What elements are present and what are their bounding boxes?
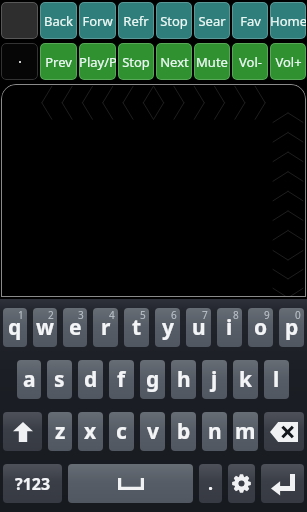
staticText: c	[116, 417, 127, 446]
staticText: 7	[202, 308, 208, 322]
button[interactable]: Prev	[40, 43, 77, 80]
button[interactable]: q	[3, 308, 27, 347]
button[interactable]: j	[202, 360, 227, 399]
staticText: 6	[171, 308, 177, 322]
staticText: e	[69, 313, 82, 342]
staticText: 9	[264, 308, 270, 322]
button[interactable]: e	[63, 308, 87, 347]
button[interactable]: n	[202, 412, 227, 451]
staticText: k	[239, 365, 253, 394]
button[interactable]: w	[33, 308, 57, 347]
button[interactable]: Stop	[118, 43, 154, 80]
staticText: 5	[140, 308, 146, 322]
staticText: 0	[295, 308, 301, 322]
staticText: l	[273, 365, 280, 394]
staticText: Play/P	[79, 53, 116, 71]
staticText: y	[162, 313, 174, 342]
button[interactable]: b	[171, 412, 196, 451]
staticText: 1	[18, 308, 24, 322]
button[interactable]: Menu	[1, 2, 38, 39]
staticText: r	[101, 313, 111, 342]
staticText: Prev	[45, 53, 72, 71]
staticText: Vol+	[275, 53, 302, 71]
staticText: t	[132, 313, 142, 342]
button[interactable]: r	[93, 308, 118, 347]
staticText: Vol-	[239, 53, 262, 71]
staticText: u	[192, 313, 206, 342]
staticText: Stop	[122, 53, 150, 71]
button[interactable]: d	[78, 360, 103, 399]
staticText: 2	[48, 308, 54, 322]
staticText: d	[84, 365, 98, 394]
staticText: Refr	[123, 12, 149, 30]
button[interactable]: Enter	[261, 464, 304, 503]
button[interactable]: x	[78, 412, 103, 451]
staticText: w	[36, 313, 54, 342]
button[interactable]: Settings	[228, 464, 255, 503]
staticText: Mute	[196, 53, 228, 71]
button[interactable]: Mute	[194, 43, 230, 80]
button[interactable]: Forw	[79, 2, 116, 39]
staticText: 3	[78, 308, 84, 322]
button[interactable]: Next	[156, 43, 192, 80]
button[interactable]: Home	[270, 2, 306, 39]
staticText: m	[235, 417, 256, 446]
staticText: 8	[233, 308, 239, 322]
button[interactable]: k	[233, 360, 258, 399]
button[interactable]: i	[217, 308, 242, 347]
button[interactable]: Fav	[232, 2, 268, 39]
button[interactable]: z	[48, 412, 72, 451]
button[interactable]: l	[264, 360, 289, 399]
button[interactable]: ?123	[3, 464, 62, 503]
button[interactable]: Vol+	[270, 43, 306, 80]
staticText: o	[254, 313, 268, 342]
button[interactable]: o	[248, 308, 273, 347]
staticText: Next	[160, 53, 189, 71]
button[interactable]: g	[140, 360, 165, 399]
staticText: g	[146, 365, 160, 394]
staticText: a	[23, 365, 36, 394]
button[interactable]: v	[140, 412, 165, 451]
button[interactable]: f	[109, 360, 134, 399]
button[interactable]: s	[47, 360, 72, 399]
button[interactable]: Vol-	[232, 43, 268, 80]
staticText: q	[8, 313, 22, 342]
staticText: v	[147, 417, 159, 446]
staticText: .	[208, 471, 214, 496]
button[interactable]: m	[233, 412, 258, 451]
button[interactable]: Space	[68, 464, 193, 503]
staticText: i	[226, 313, 233, 342]
staticText: b	[177, 417, 191, 446]
button[interactable]: Backspace	[264, 412, 304, 451]
staticText: f	[117, 365, 126, 394]
button[interactable]: Play/P	[79, 43, 116, 80]
staticText: 4	[109, 308, 115, 322]
button[interactable]: t	[124, 308, 149, 347]
button[interactable]: Shift	[3, 412, 42, 451]
button[interactable]: Stop	[156, 2, 192, 39]
button[interactable]: a	[17, 360, 41, 399]
button[interactable]: Refr	[118, 2, 154, 39]
button[interactable]: More	[1, 43, 38, 80]
button[interactable]: .	[199, 464, 222, 503]
staticText: j	[211, 365, 218, 394]
button[interactable]	[1, 84, 306, 297]
staticText: z	[55, 417, 66, 446]
button[interactable]: Back	[40, 2, 77, 39]
staticText: Sear	[198, 12, 226, 30]
button[interactable]: Sear	[194, 2, 230, 39]
button[interactable]: h	[171, 360, 196, 399]
staticText: n	[208, 417, 222, 446]
staticText: Stop	[160, 12, 188, 30]
staticText: Forw	[82, 12, 113, 30]
staticText: x	[84, 417, 97, 446]
staticText: p	[285, 313, 299, 342]
staticText: h	[177, 365, 191, 394]
button[interactable]: u	[186, 308, 211, 347]
staticText: Back	[44, 12, 73, 30]
button[interactable]: p	[279, 308, 304, 347]
button[interactable]: y	[155, 308, 180, 347]
button[interactable]: c	[109, 412, 134, 451]
staticText: Fav	[240, 12, 261, 30]
staticText: s	[54, 365, 65, 394]
